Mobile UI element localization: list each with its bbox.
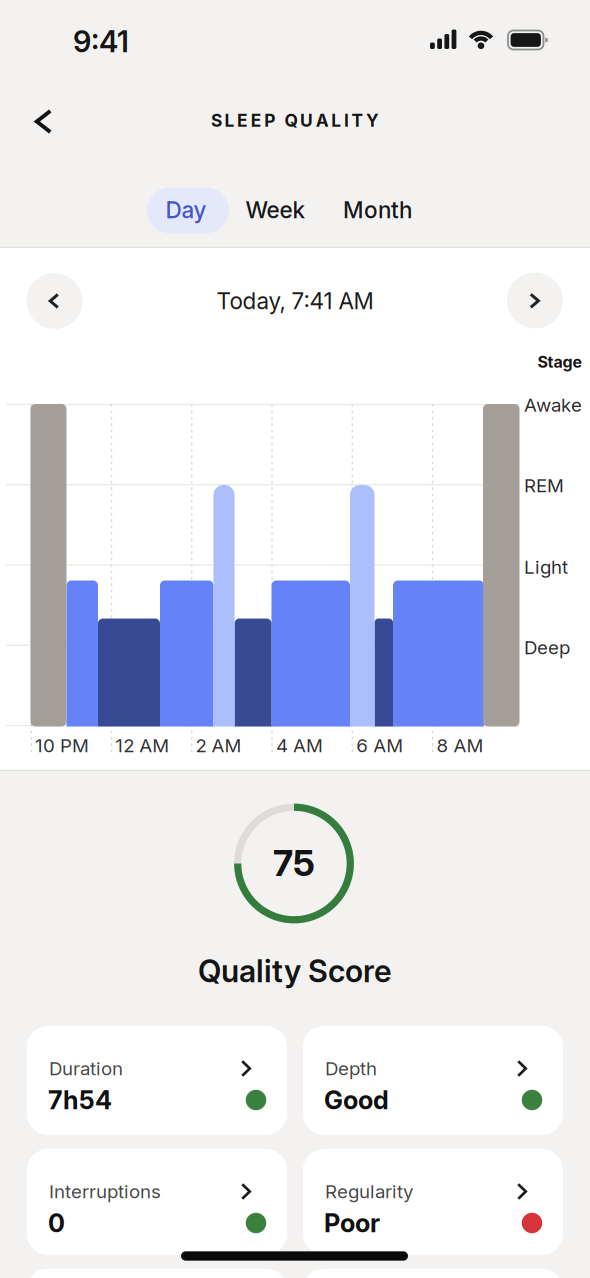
staticText: Week xyxy=(245,197,305,223)
staticText: U xyxy=(300,110,313,131)
staticText: L xyxy=(224,110,234,131)
staticText: I xyxy=(344,110,349,131)
staticText: 12 AM xyxy=(115,734,169,756)
staticText: Interruptions xyxy=(49,1180,161,1202)
staticText: Good xyxy=(324,1085,389,1115)
staticText: A xyxy=(316,110,329,131)
staticText: Duration xyxy=(49,1057,123,1079)
staticText: 4 AM xyxy=(276,734,323,756)
staticText: REM xyxy=(524,474,564,496)
staticText: Light xyxy=(524,556,568,578)
staticText: 10 PM xyxy=(35,734,89,756)
staticText: T xyxy=(351,110,363,131)
staticText: 2 AM xyxy=(196,734,242,756)
staticText: 8 AM xyxy=(436,734,483,756)
staticText: 9:41 xyxy=(73,24,129,59)
staticText: Poor xyxy=(324,1208,380,1238)
staticText: S xyxy=(211,110,222,131)
staticText: 0 xyxy=(48,1208,65,1238)
staticText: E xyxy=(251,110,262,131)
staticText: Quality Score xyxy=(198,953,392,989)
staticText: L xyxy=(331,110,341,131)
staticText: E xyxy=(237,110,248,131)
staticText: Today, 7:41 AM xyxy=(216,288,373,314)
staticText: 7h54 xyxy=(48,1085,112,1115)
staticText: Q xyxy=(284,110,297,131)
staticText: 75 xyxy=(273,842,315,884)
staticText: Y xyxy=(366,110,379,131)
staticText: P xyxy=(264,110,275,131)
staticText: Depth xyxy=(325,1057,377,1079)
staticText: Awake xyxy=(524,394,582,416)
staticText: Stage xyxy=(537,353,582,371)
staticText: Deep xyxy=(524,636,570,658)
staticText: 6 AM xyxy=(356,734,403,756)
staticText: Regularity xyxy=(325,1180,413,1202)
staticText: Day xyxy=(165,197,206,223)
staticText: Month xyxy=(343,197,412,223)
